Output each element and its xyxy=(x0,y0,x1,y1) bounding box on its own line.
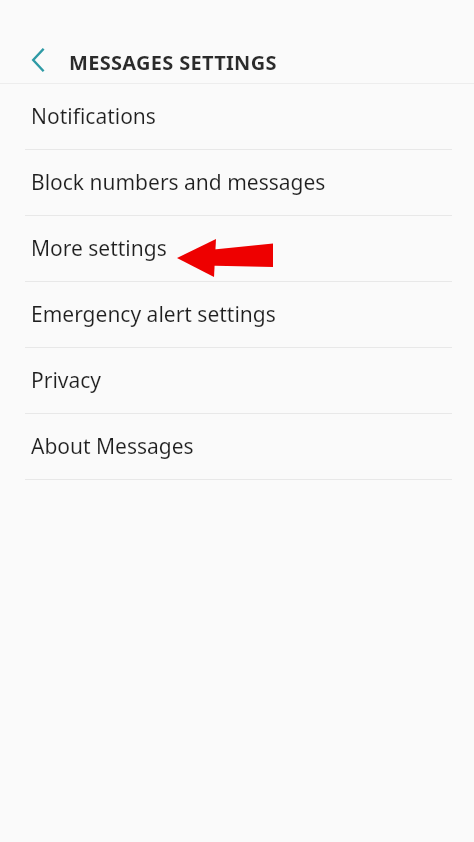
staticText: More settings xyxy=(31,234,167,263)
staticText: Privacy xyxy=(31,366,102,395)
staticText: Notifications xyxy=(31,102,156,131)
button[interactable]: Navigate up xyxy=(16,38,60,82)
staticText: Block numbers and messages xyxy=(31,168,326,197)
button[interactable]: More settings xyxy=(0,216,474,281)
button[interactable]: About Messages xyxy=(0,414,474,479)
button[interactable]: Emergency alert settings xyxy=(0,282,474,347)
staticText: About Messages xyxy=(31,432,194,461)
button[interactable]: Block numbers and messages xyxy=(0,150,474,215)
button[interactable]: Notifications xyxy=(0,84,474,149)
staticText: Emergency alert settings xyxy=(31,300,276,329)
button[interactable]: Privacy xyxy=(0,348,474,413)
staticText: MESSAGES SETTINGS xyxy=(69,49,277,76)
